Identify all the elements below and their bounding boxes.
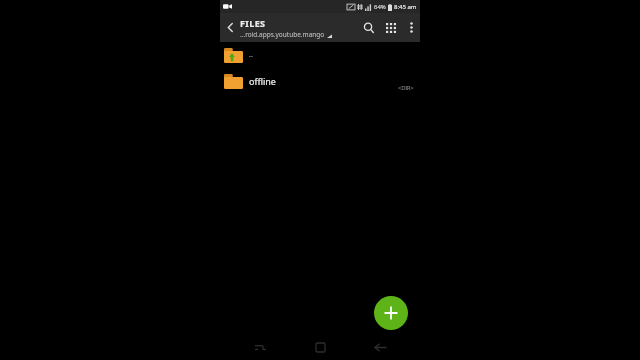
- staticText: 64%: [374, 3, 386, 11]
- staticText: <DIR>: [398, 84, 414, 91]
- button[interactable]: Back: [220, 13, 240, 42]
- button[interactable]: Home: [300, 334, 340, 360]
- button[interactable]: Grid view: [380, 13, 402, 42]
- button[interactable]: Recents: [240, 334, 280, 360]
- staticText: offline: [249, 75, 276, 87]
- button[interactable]: Back: [360, 334, 400, 360]
- staticText: …roid.apps.youtube.mango: [240, 30, 325, 39]
- staticText: ..: [249, 50, 253, 60]
- button[interactable]: Search: [358, 13, 380, 42]
- staticText: FILES: [240, 17, 266, 29]
- button[interactable]: offline: [220, 68, 420, 94]
- staticText: 8:45 am: [394, 3, 417, 11]
- button[interactable]: More options: [402, 13, 420, 42]
- button[interactable]: ..: [220, 42, 420, 68]
- button[interactable]: Add: [374, 296, 408, 330]
